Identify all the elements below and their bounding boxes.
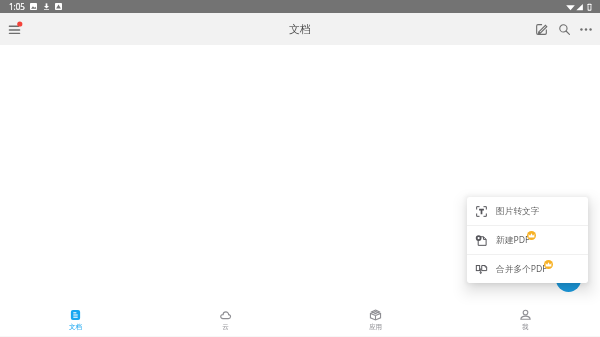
button[interactable]: New document <box>556 267 581 292</box>
staticText: 文档 <box>69 323 82 331</box>
staticText: 我 <box>522 323 529 331</box>
button[interactable]: Search <box>552 17 576 41</box>
staticText: 新建PDF <box>496 234 530 246</box>
button[interactable]: 文档 <box>0 297 150 337</box>
button[interactable]: 图片转文字 <box>467 197 588 225</box>
staticText: 应用 <box>369 323 382 331</box>
staticText: 1:05 <box>9 1 25 12</box>
button[interactable]: 云 <box>150 297 300 337</box>
staticText: 图片转文字 <box>496 206 540 217</box>
staticText: 合并多个PDF <box>496 263 547 275</box>
staticText: 云 <box>222 323 229 331</box>
button[interactable]: 新建PDF <box>467 226 588 254</box>
button[interactable]: 合并多个PDF <box>467 255 588 283</box>
button[interactable]: More options <box>574 17 598 41</box>
button[interactable]: Edit <box>529 17 553 41</box>
button[interactable]: Navigation menu <box>2 17 26 41</box>
button[interactable]: 我 <box>450 297 600 337</box>
staticText: 文档 <box>289 22 311 36</box>
button[interactable]: 应用 <box>300 297 450 337</box>
